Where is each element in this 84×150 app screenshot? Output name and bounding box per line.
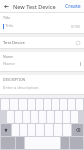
staticText: Enter a description — [3, 85, 39, 90]
other: Select device — [74, 39, 81, 46]
staticText: Title — [5, 23, 14, 29]
staticText: 0/100 — [71, 24, 81, 29]
staticText: Title — [3, 15, 11, 20]
button[interactable]: Backspace — [72, 124, 83, 136]
staticText: Create — [65, 3, 81, 10]
button[interactable]: Title — [0, 13, 84, 33]
button[interactable]: Test Device — [0, 37, 84, 48]
staticText: Test Device — [3, 40, 25, 46]
button[interactable]: Back — [2, 2, 11, 11]
staticText: DESCRIPTION — [3, 77, 26, 82]
staticText: New Test Device — [13, 3, 56, 10]
staticText: Name — [3, 54, 14, 59]
button[interactable]: DESCRIPTION — [0, 75, 84, 94]
button[interactable]: Shift — [1, 124, 11, 136]
button[interactable]: Create — [65, 3, 81, 10]
staticText: Name — [3, 61, 15, 67]
button[interactable]: Name — [0, 52, 84, 71]
